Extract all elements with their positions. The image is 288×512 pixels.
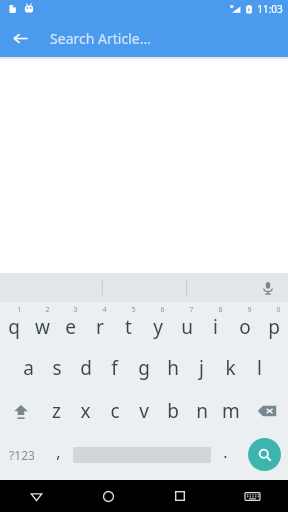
staticText: n bbox=[196, 398, 208, 424]
staticText: e bbox=[65, 314, 76, 340]
staticText: c bbox=[110, 398, 120, 424]
staticText: . bbox=[223, 441, 228, 463]
staticText: m bbox=[222, 398, 240, 424]
button[interactable]: n bbox=[187, 389, 216, 432]
button[interactable]: Search Article... bbox=[50, 23, 278, 53]
button[interactable]: Voice input bbox=[256, 276, 280, 300]
staticText: s bbox=[52, 355, 62, 381]
staticText: j bbox=[199, 355, 204, 381]
button[interactable]: 0 bbox=[259, 302, 288, 346]
button[interactable]: . bbox=[211, 432, 240, 477]
staticText: x bbox=[80, 398, 91, 424]
staticText: 8 bbox=[218, 305, 223, 315]
button[interactable]: d bbox=[71, 346, 100, 389]
button[interactable]: c bbox=[100, 389, 129, 432]
button[interactable]: s bbox=[42, 346, 71, 389]
staticText: k bbox=[225, 355, 236, 381]
button[interactable]: h bbox=[158, 346, 187, 389]
staticText: u bbox=[181, 314, 193, 340]
button[interactable]: m bbox=[216, 389, 245, 432]
button[interactable]: Back bbox=[0, 480, 72, 512]
button[interactable]: , bbox=[44, 432, 73, 477]
staticText: l bbox=[257, 355, 262, 381]
button[interactable]: Backspace bbox=[245, 389, 288, 432]
button[interactable]: Home bbox=[72, 480, 144, 512]
staticText: f bbox=[111, 355, 118, 381]
staticText: 6 bbox=[160, 305, 165, 315]
staticText: d bbox=[80, 355, 92, 381]
button[interactable] bbox=[73, 432, 211, 477]
button[interactable]: j bbox=[187, 346, 216, 389]
button[interactable]: Shift bbox=[0, 389, 42, 432]
button[interactable]: 7 bbox=[172, 302, 201, 346]
button[interactable]: g bbox=[129, 346, 158, 389]
button[interactable]: 3 bbox=[56, 302, 85, 346]
button[interactable]: 1 bbox=[0, 302, 28, 346]
staticText: 4 bbox=[102, 305, 107, 315]
staticText: w bbox=[35, 314, 50, 340]
button[interactable]: k bbox=[216, 346, 245, 389]
staticText: b bbox=[167, 398, 179, 424]
button[interactable]: 2 bbox=[28, 302, 56, 346]
staticText: t bbox=[125, 314, 132, 340]
staticText: q bbox=[8, 314, 20, 340]
staticText: h bbox=[167, 355, 179, 381]
staticText: a bbox=[23, 355, 34, 381]
button[interactable]: 8 bbox=[201, 302, 230, 346]
button[interactable]: Switch keyboard bbox=[216, 480, 288, 512]
button[interactable]: z bbox=[42, 389, 71, 432]
button[interactable]: 5 bbox=[114, 302, 143, 346]
staticText: p bbox=[268, 314, 280, 340]
button[interactable]: f bbox=[100, 346, 129, 389]
staticText: Search Article... bbox=[50, 29, 151, 48]
staticText: 9 bbox=[247, 305, 252, 315]
button[interactable]: a bbox=[14, 346, 42, 389]
button[interactable]: 6 bbox=[143, 302, 172, 346]
button[interactable]: b bbox=[158, 389, 187, 432]
button[interactable]: 4 bbox=[85, 302, 114, 346]
staticText: 7 bbox=[189, 305, 194, 315]
staticText: z bbox=[52, 398, 61, 424]
staticText: 0 bbox=[276, 305, 281, 315]
staticText: ?123 bbox=[9, 447, 35, 463]
staticText: 1 bbox=[17, 305, 22, 315]
staticText: y bbox=[153, 314, 163, 340]
staticText: 2 bbox=[45, 305, 50, 315]
button[interactable]: Recent apps bbox=[144, 480, 216, 512]
staticText: 3 bbox=[73, 305, 78, 315]
staticText: g bbox=[138, 355, 150, 381]
button[interactable]: l bbox=[245, 346, 274, 389]
staticText: r bbox=[96, 314, 104, 340]
staticText: 11:03 bbox=[257, 2, 283, 16]
staticText: o bbox=[239, 314, 251, 340]
staticText: 5 bbox=[131, 305, 136, 315]
button[interactable]: v bbox=[129, 389, 158, 432]
button[interactable]: Back bbox=[8, 26, 32, 50]
button[interactable]: x bbox=[71, 389, 100, 432]
staticText: , bbox=[56, 441, 61, 463]
button[interactable]: ?123 bbox=[0, 432, 44, 477]
staticText: i bbox=[213, 314, 218, 340]
button[interactable]: Search bbox=[240, 432, 288, 477]
staticText: v bbox=[139, 398, 149, 424]
button[interactable]: 9 bbox=[230, 302, 259, 346]
